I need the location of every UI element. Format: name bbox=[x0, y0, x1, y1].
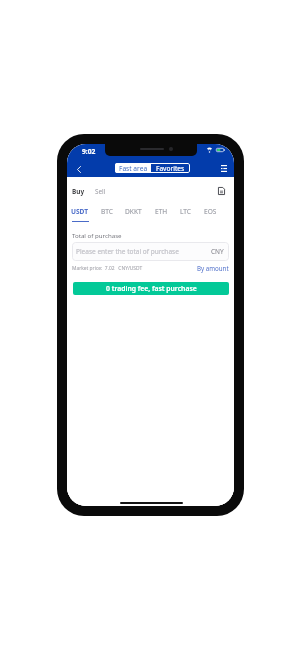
staticText: CNY bbox=[211, 247, 224, 256]
button[interactable]: 0 trading fee, fast purchase bbox=[73, 282, 229, 295]
button[interactable]: By amount bbox=[197, 262, 229, 273]
button[interactable]: Back bbox=[70, 158, 88, 180]
button[interactable]: EOS bbox=[203, 207, 218, 222]
button[interactable]: ETH bbox=[154, 207, 169, 222]
button[interactable]: DKKT bbox=[124, 207, 143, 222]
staticText: USDT bbox=[71, 207, 89, 216]
staticText: DKKT bbox=[125, 207, 142, 216]
staticText: Please enter the total of purchase bbox=[76, 247, 179, 256]
staticText: Market price: 7.02 CNY/USDT bbox=[72, 265, 143, 272]
staticText: 0 trading fee, fast purchase bbox=[106, 284, 197, 293]
button[interactable]: Sell bbox=[89, 182, 111, 200]
staticText: Buy bbox=[72, 187, 85, 196]
button[interactable]: Fast area bbox=[115, 163, 151, 173]
staticText: BTC bbox=[101, 207, 113, 216]
button[interactable]: USDT bbox=[70, 207, 90, 222]
staticText: Favorites bbox=[156, 164, 185, 173]
staticText: Total of purchase bbox=[72, 231, 122, 239]
button[interactable]: LTC bbox=[179, 207, 193, 222]
staticText: 9:02 bbox=[82, 147, 96, 156]
button[interactable]: Favorites bbox=[151, 163, 190, 173]
button[interactable]: Buy bbox=[67, 182, 89, 200]
staticText: Sell bbox=[95, 187, 106, 196]
staticText: LTC bbox=[180, 207, 192, 216]
button[interactable]: Please enter the total of purchase bbox=[72, 242, 229, 261]
staticText: EOS bbox=[204, 207, 217, 216]
button[interactable]: Orders bbox=[212, 181, 230, 201]
button[interactable]: Menu bbox=[214, 157, 233, 179]
button[interactable]: BTC bbox=[100, 207, 114, 222]
staticText: Fast area bbox=[119, 164, 148, 173]
staticText: ETH bbox=[155, 207, 168, 216]
staticText: By amount bbox=[197, 264, 229, 272]
